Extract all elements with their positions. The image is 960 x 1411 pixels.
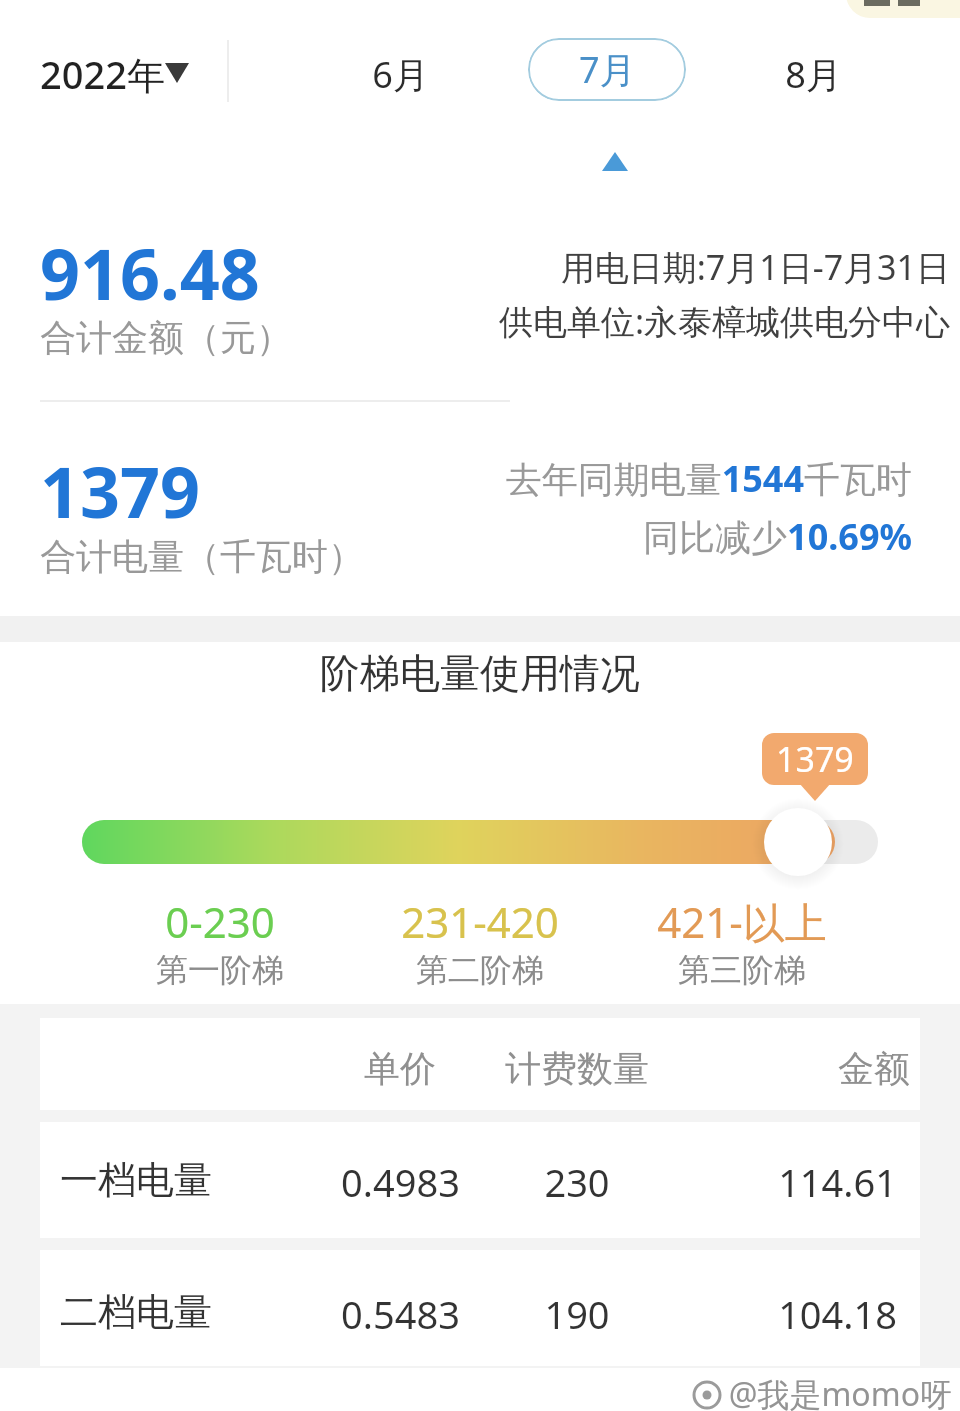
staticText: 第一阶梯 (156, 950, 284, 990)
staticText: 一档电量 (60, 1156, 212, 1204)
button[interactable] (40, 1250, 920, 1366)
staticText: 6月 (372, 50, 429, 99)
staticText: 190 (544, 1288, 610, 1340)
staticText: 7月 (579, 45, 636, 94)
staticText: 916.48 (40, 225, 260, 320)
button[interactable]: 2022年 (40, 48, 165, 100)
staticText: 合计电量（千瓦时） (40, 534, 364, 579)
staticText: 230 (544, 1156, 610, 1208)
button[interactable] (40, 1122, 920, 1238)
staticText: 8月 (785, 50, 842, 99)
staticText: 合计金额（元） (40, 315, 292, 360)
button[interactable] (0, 720, 960, 890)
button[interactable]: 7月 (528, 38, 686, 101)
staticText: 1379 (776, 736, 854, 782)
staticText: 第三阶梯 (678, 950, 806, 990)
staticText: 0.5483 (341, 1288, 460, 1340)
staticText: 104.18 (778, 1288, 897, 1340)
staticText: 0-230 (165, 893, 275, 950)
staticText: 1379 (40, 443, 201, 538)
staticText: 114.61 (778, 1156, 897, 1208)
staticText: @我是momo呀 (728, 1372, 952, 1411)
staticText: 231-420 (401, 893, 559, 950)
staticText: 421-以上 (657, 893, 827, 950)
staticText: 二档电量 (60, 1288, 212, 1336)
button[interactable]: 6月 (340, 50, 460, 99)
staticText: 计费数量 (505, 1046, 649, 1091)
staticText: 用电日期:7月1日-7月31日 (560, 244, 950, 290)
staticText: 第二阶梯 (416, 950, 544, 990)
staticText: 同比减少10.69% (643, 512, 912, 561)
staticText: 供电单位:永泰樟城供电分中心 (498, 298, 950, 344)
staticText: 去年同期电量1544千瓦时 (505, 454, 912, 503)
staticText: 0.4983 (341, 1156, 460, 1208)
staticText: 单价 (364, 1046, 436, 1091)
staticText: 阶梯电量使用情况 (320, 648, 640, 698)
button[interactable]: 8月 (753, 50, 873, 99)
staticText: 金额 (838, 1046, 910, 1091)
